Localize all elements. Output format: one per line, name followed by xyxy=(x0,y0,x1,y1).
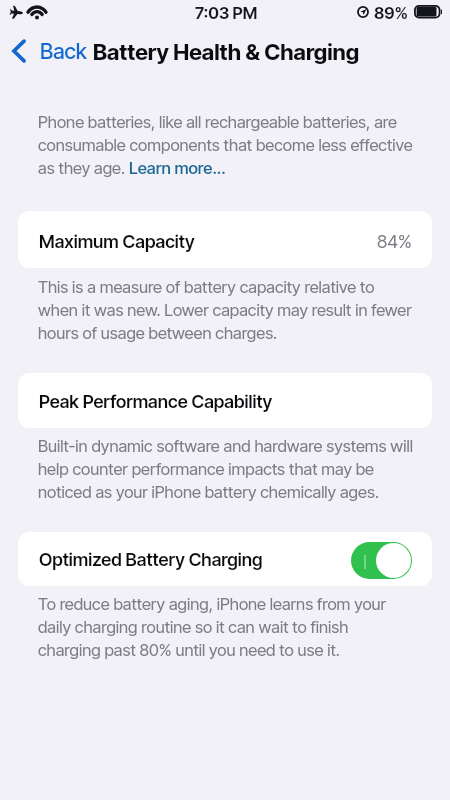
staticText: Phone batteries, like all rechargeable b… xyxy=(38,112,397,132)
staticText: Built-in dynamic software and hardware s… xyxy=(38,436,413,456)
staticText: Battery Health & Charging xyxy=(93,38,360,65)
button[interactable]: Optimized Battery Charging xyxy=(18,532,432,586)
staticText: noticed as your iPhone battery chemicall… xyxy=(38,482,379,502)
button[interactable]: Maximum Capacity xyxy=(18,211,432,268)
staticText: To reduce battery aging, iPhone learns f… xyxy=(38,594,386,614)
staticText: consumable components that become less e… xyxy=(38,135,413,155)
staticText: daily charging routine so it can wait to… xyxy=(38,617,349,637)
staticText: Back xyxy=(40,38,87,64)
button[interactable]: Learn more... xyxy=(129,158,226,178)
staticText: as they age. xyxy=(38,158,129,178)
staticText: Maximum Capacity xyxy=(39,231,195,253)
staticText: 7:03 PM xyxy=(195,3,258,23)
staticText: 89% xyxy=(374,3,409,23)
staticText: when it was new. Lower capacity may resu… xyxy=(38,300,412,320)
staticText: Optimized Battery Charging xyxy=(39,549,263,571)
button[interactable]: Optimized Battery Charging xyxy=(351,542,412,579)
button[interactable]: Peak Performance Capability xyxy=(18,373,432,428)
button[interactable]: Back xyxy=(12,38,87,64)
staticText: Peak Performance Capability xyxy=(39,391,273,413)
staticText: 84% xyxy=(377,231,412,253)
staticText: charging past 80% until you need to use … xyxy=(38,640,340,660)
staticText: This is a measure of battery capacity re… xyxy=(38,277,375,297)
staticText: hours of usage between charges. xyxy=(38,323,278,343)
staticText: help counter performance impacts that ma… xyxy=(38,459,375,479)
